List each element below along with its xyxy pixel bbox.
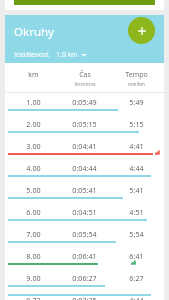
staticText: 0:05:54	[72, 229, 97, 239]
button[interactable]: 6.00	[5, 203, 164, 225]
staticText: 3.00	[26, 141, 41, 151]
staticText: 0:04:41	[72, 141, 97, 151]
button[interactable]: 4.00	[5, 159, 164, 181]
staticText: 5:15	[129, 119, 144, 129]
button[interactable]: 7.00	[5, 225, 164, 247]
staticText: 1.0 km	[56, 50, 78, 59]
staticText: 4.00	[26, 163, 41, 173]
button[interactable]: 8.00	[5, 247, 164, 269]
button[interactable]: 9.72	[5, 291, 164, 300]
button[interactable]: 5.00	[5, 181, 164, 203]
staticText: 4:41	[129, 141, 144, 151]
staticText: 9.00	[26, 273, 41, 283]
staticText: 0:04:44	[72, 163, 97, 173]
staticText: 6:27	[129, 273, 144, 283]
staticText: km	[28, 70, 39, 80]
staticText: 1.00	[26, 97, 41, 107]
staticText: 8.00	[26, 251, 41, 261]
staticText: 4:44	[129, 163, 144, 173]
staticText: 9.72	[26, 295, 41, 300]
staticText: 5:49	[129, 97, 144, 107]
button[interactable]: Add lap	[128, 17, 155, 44]
staticText: 0:03:25	[72, 295, 97, 300]
button[interactable]: 1.00	[5, 93, 164, 115]
staticText: min/km	[128, 81, 145, 87]
staticText: 4:51	[129, 207, 144, 217]
button[interactable]: 2.00	[5, 115, 164, 137]
staticText: Okruhy	[14, 24, 54, 40]
button[interactable]: 9.00	[5, 269, 164, 291]
staticText: hh:mm:ss	[74, 81, 96, 87]
staticText: 7.00	[26, 229, 41, 239]
button[interactable]: 3.00	[5, 137, 164, 159]
staticText: 6:41	[129, 251, 144, 261]
staticText: 0:06:41	[72, 251, 97, 261]
button[interactable]: Vzdálenost	[14, 50, 87, 59]
staticText: 0:05:41	[72, 185, 97, 195]
staticText: 5.00	[26, 185, 41, 195]
staticText: Čas	[79, 70, 91, 80]
staticText: 0:06:27	[72, 273, 97, 283]
staticText: 0:04:51	[72, 207, 97, 217]
staticText: 4:44	[129, 295, 144, 300]
staticText: 0:05:49	[72, 97, 97, 107]
staticText: 2.00	[26, 119, 41, 129]
staticText: Vzdálenost	[14, 50, 49, 59]
staticText: 0:05:15	[72, 119, 97, 129]
staticText: 5:54	[129, 229, 144, 239]
staticText: 5:41	[129, 185, 144, 195]
staticText: 6.00	[26, 207, 41, 217]
staticText: Tempo	[125, 70, 148, 80]
